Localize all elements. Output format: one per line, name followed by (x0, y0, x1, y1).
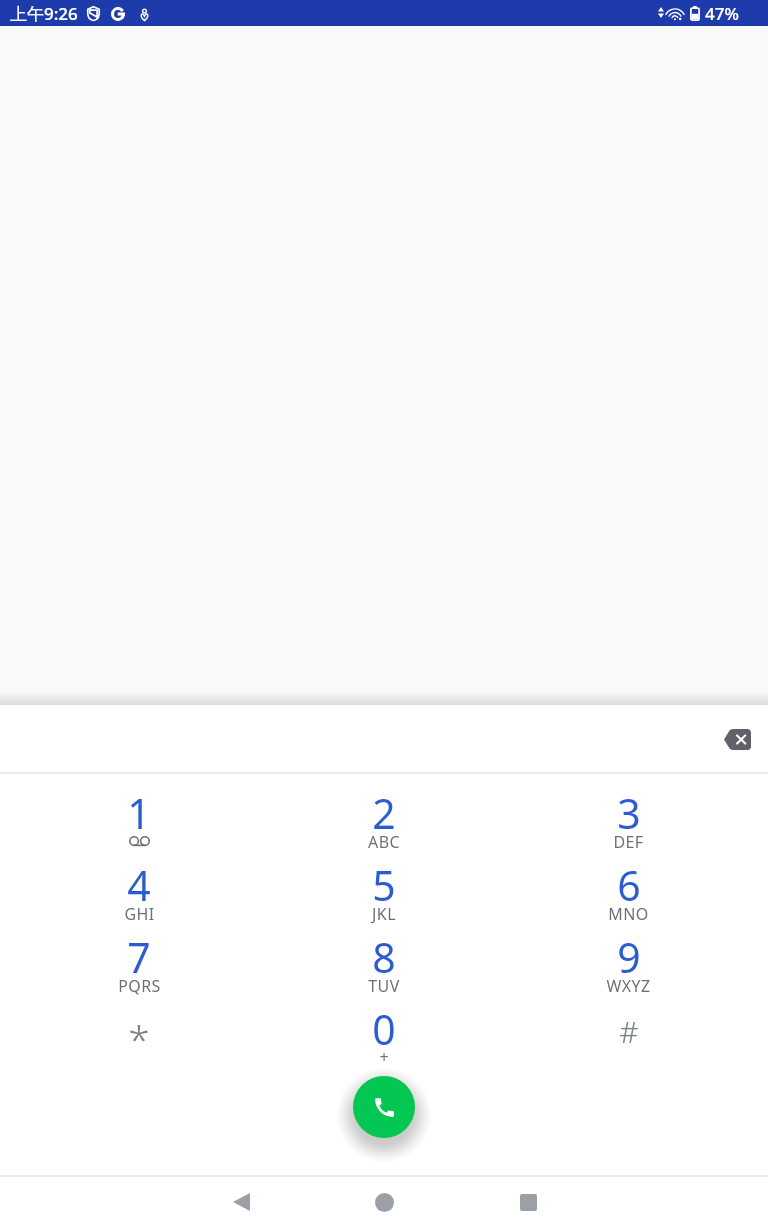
staticText: * (128, 1012, 150, 1065)
staticText: 7 (127, 929, 151, 985)
button[interactable]: 7 (17, 916, 261, 988)
button[interactable]: 0 (261, 988, 506, 1060)
button[interactable]: Backspace (711, 713, 763, 765)
staticText: 3 (617, 785, 641, 841)
staticText: 6 (617, 857, 641, 913)
button[interactable]: Home (360, 1178, 408, 1226)
staticText: PQRS (118, 975, 161, 997)
button[interactable]: 4 (17, 844, 261, 916)
staticText: # (619, 1011, 639, 1052)
button[interactable]: Call (353, 1076, 415, 1138)
staticText: + (379, 1046, 389, 1068)
staticText: 0 (372, 1001, 396, 1057)
button[interactable]: 2 (261, 772, 506, 844)
button[interactable]: 1 (17, 772, 261, 844)
button[interactable]: 8 (261, 916, 506, 988)
staticText: MNO (608, 903, 649, 925)
staticText: ABC (368, 831, 400, 853)
button[interactable]: 3 (506, 772, 751, 844)
staticText: 2 (372, 785, 396, 841)
staticText: 4 (127, 857, 151, 913)
staticText: 47% (705, 2, 739, 25)
staticText: 9 (617, 929, 641, 985)
staticText: WXYZ (606, 975, 651, 997)
staticText: 5 (372, 857, 396, 913)
staticText: TUV (368, 975, 400, 997)
button[interactable]: 6 (506, 844, 751, 916)
button[interactable]: Recent apps (504, 1178, 552, 1226)
staticText: 上午9:26 (10, 2, 78, 25)
button[interactable]: Back (217, 1178, 265, 1226)
button[interactable]: # (506, 988, 751, 1060)
staticText: JKL (372, 903, 396, 925)
staticText: DEF (613, 831, 644, 853)
button[interactable]: 5 (261, 844, 506, 916)
staticText: 8 (372, 929, 396, 985)
button[interactable]: * (17, 988, 261, 1060)
button[interactable]: 9 (506, 916, 751, 988)
staticText: 1 (127, 785, 151, 841)
staticText: GHI (124, 903, 155, 925)
